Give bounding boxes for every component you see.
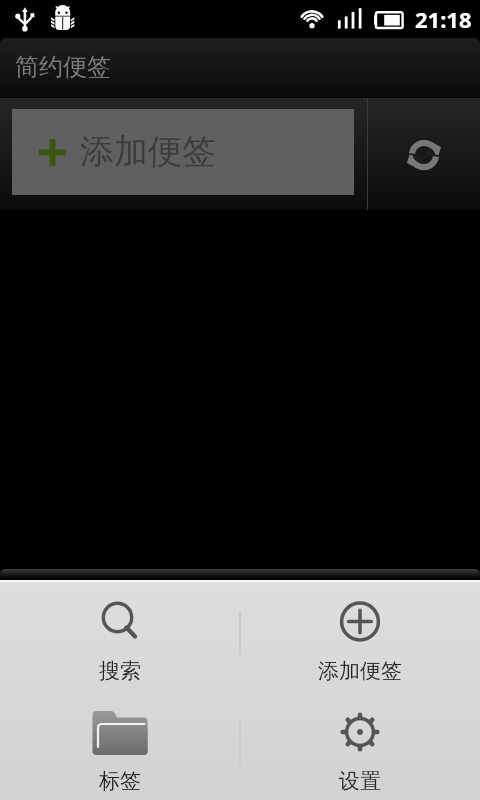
button[interactable]: 设置 (240, 691, 480, 800)
button[interactable]: Sync (368, 98, 480, 210)
button[interactable]: 搜索 (0, 582, 240, 691)
staticText: 21:18 (415, 4, 472, 34)
staticText: 添加便签 (318, 658, 402, 684)
staticText: 标签 (99, 768, 141, 794)
staticText: 设置 (339, 768, 381, 794)
button[interactable]: 添加便签 (12, 109, 354, 195)
button[interactable]: 标签 (0, 691, 240, 800)
staticText: 搜索 (99, 658, 141, 684)
button[interactable]: 添加便签 (240, 582, 480, 691)
staticText: 添加便签 (80, 130, 216, 173)
staticText: 简约便签 (15, 52, 111, 82)
